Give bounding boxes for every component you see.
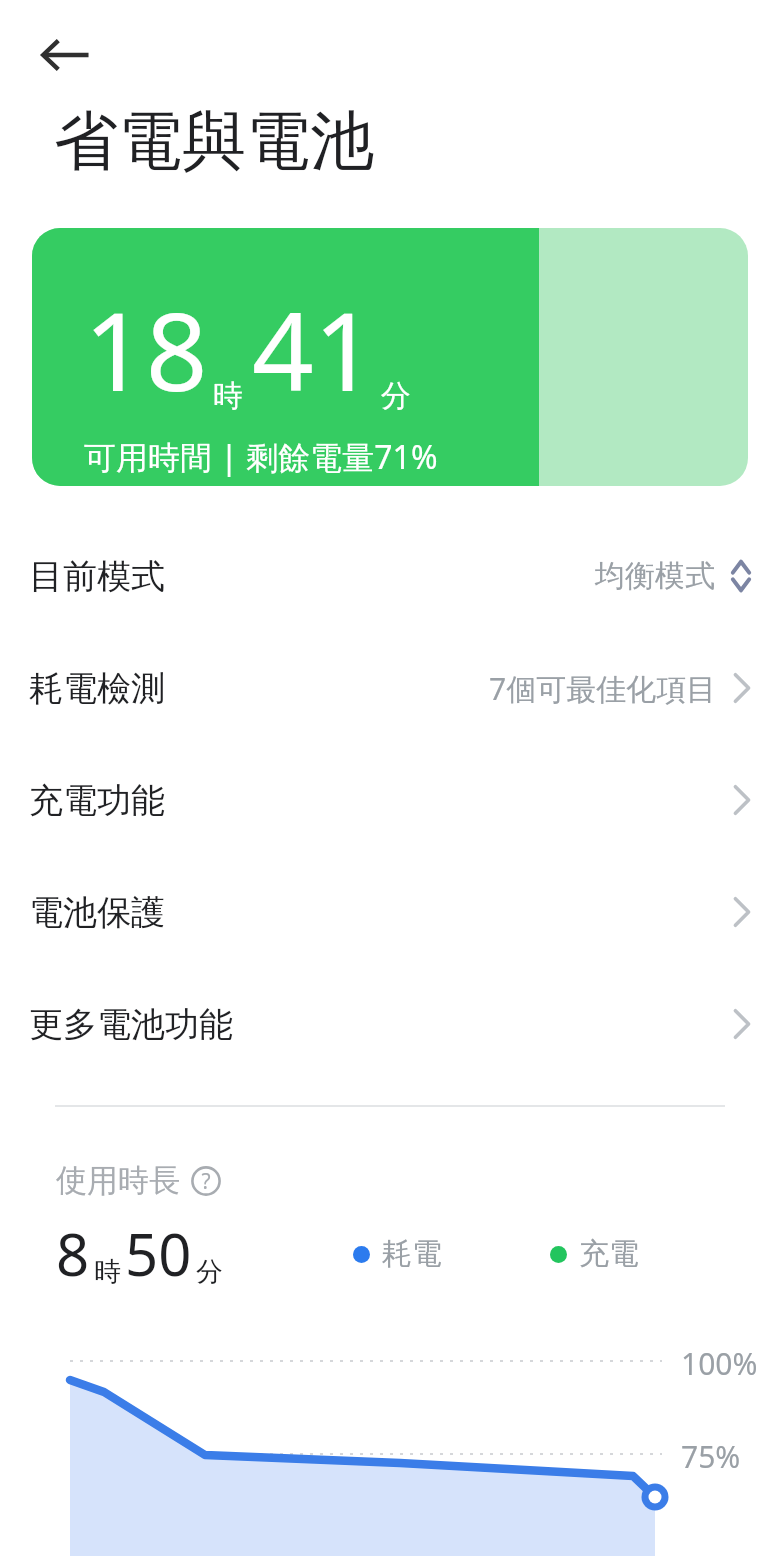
staticText: 均衡模式 — [595, 557, 715, 595]
button[interactable]: 耗電檢測 — [0, 632, 780, 744]
staticText: 18 — [84, 276, 208, 423]
staticText: 7個可最佳化項目 — [489, 668, 717, 709]
staticText: 充電 — [579, 1235, 639, 1273]
staticText: 50 — [125, 1214, 192, 1293]
staticText: 更多電池功能 — [29, 1003, 233, 1046]
staticText: 75% — [681, 1436, 741, 1477]
button[interactable]: Help about usage duration — [189, 1164, 223, 1198]
staticText: 可用時間 | 剩餘電量71% — [84, 435, 438, 479]
staticText: 8 — [56, 1214, 90, 1293]
staticText: 省電與電池 — [54, 101, 374, 182]
staticText: 耗電檢測 — [29, 667, 165, 710]
staticText: 時 — [94, 1255, 121, 1289]
button[interactable]: 目前模式 — [0, 520, 780, 632]
staticText: 分 — [381, 377, 411, 415]
staticText: 使用時長 — [56, 1161, 180, 1200]
button[interactable]: 18 — [32, 228, 748, 486]
staticText: 分 — [196, 1255, 223, 1289]
button[interactable]: 充電功能 — [0, 744, 780, 856]
staticText: 充電功能 — [29, 779, 165, 822]
staticText: 時 — [213, 377, 243, 415]
staticText: 耗電 — [382, 1235, 442, 1273]
staticText: 41 — [252, 276, 376, 423]
button[interactable]: Back — [33, 23, 97, 87]
staticText: 電池保護 — [29, 891, 165, 934]
staticText: 100% — [681, 1343, 758, 1384]
staticText: 目前模式 — [29, 555, 165, 598]
button[interactable]: 更多電池功能 — [0, 968, 780, 1080]
button[interactable]: 電池保護 — [0, 856, 780, 968]
staticText: ? — [201, 1167, 211, 1196]
